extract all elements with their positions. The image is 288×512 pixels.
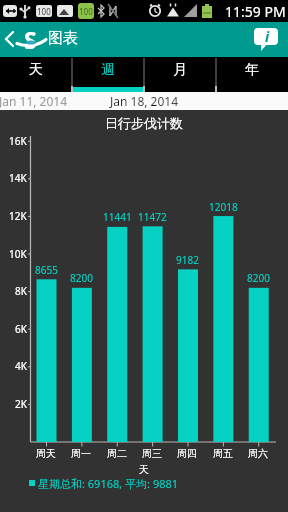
staticText: 6K [15, 322, 27, 336]
staticText: 100 [37, 6, 51, 17]
staticText: 4K [15, 359, 27, 373]
staticText: i [265, 27, 270, 46]
staticText: 天 [139, 463, 149, 476]
staticText: 周二 [107, 447, 127, 460]
button[interactable]: 週 [72, 56, 144, 92]
staticText: 图表 [48, 29, 78, 48]
staticText: 周天 [36, 447, 56, 460]
staticText: 100 [79, 6, 93, 17]
staticText: 年 [245, 61, 259, 79]
staticText: 周四 [177, 447, 197, 460]
staticText: 8200 [70, 271, 93, 284]
staticText: 16K [9, 134, 27, 148]
staticText: 8655 [35, 263, 58, 276]
staticText: Jan 18, 2014 [110, 93, 179, 109]
button[interactable]: 月 [144, 56, 216, 92]
button[interactable]: i [244, 22, 288, 56]
staticText: 8K [15, 284, 27, 298]
staticText: 2K [15, 397, 27, 411]
button[interactable]: 天 [0, 56, 72, 92]
staticText: 12K [9, 209, 27, 223]
staticText: S [24, 24, 37, 55]
staticText: 周六 [248, 447, 268, 460]
staticText: 周三 [142, 447, 162, 460]
button[interactable]: S [0, 22, 110, 56]
staticText: 14K [9, 171, 27, 185]
staticText: 星期总和: 69168, 平均: 9881 [38, 476, 179, 491]
staticText: 日行步伐计数 [105, 115, 183, 131]
staticText: 10K [9, 247, 27, 261]
staticText: 月 [173, 61, 187, 79]
staticText: 週 [101, 61, 115, 79]
staticText: 周一 [71, 447, 91, 460]
staticText: 12018 [209, 200, 238, 213]
staticText: 天 [29, 61, 43, 79]
staticText: 8200 [247, 271, 270, 284]
staticText: 周五 [213, 447, 233, 460]
staticText: 11441 [103, 210, 132, 223]
button[interactable]: Jan 18, 2014 [89, 92, 199, 110]
staticText: 11472 [138, 210, 167, 223]
button[interactable]: 年 [216, 56, 288, 92]
staticText: 11:59 PM [225, 2, 286, 21]
staticText: Jan 11, 2014 [0, 93, 68, 109]
staticText: 9182 [176, 253, 199, 266]
